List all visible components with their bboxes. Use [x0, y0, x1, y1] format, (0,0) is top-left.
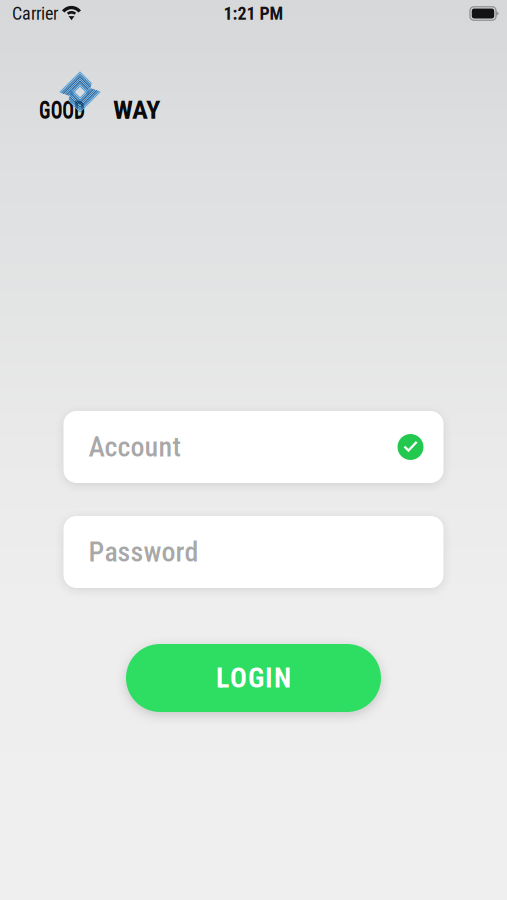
staticText: WAY [113, 94, 160, 125]
button[interactable]: Password [63, 516, 443, 588]
staticText: 1:21 PM [223, 3, 283, 24]
staticText: Account [88, 431, 180, 463]
staticText: LOGIN [216, 662, 291, 694]
button[interactable]: Account [63, 411, 443, 483]
staticText: Carrier [12, 3, 58, 24]
button[interactable]: LOGIN [126, 644, 381, 712]
staticText: Password [88, 536, 198, 568]
staticText: GOOD [39, 94, 102, 125]
